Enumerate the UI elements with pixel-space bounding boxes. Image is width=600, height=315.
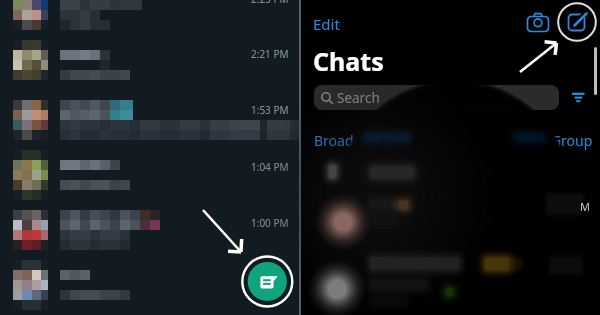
button[interactable]: Search <box>314 85 559 110</box>
button[interactable]: New chat <box>557 2 597 42</box>
staticText: Chats <box>313 44 384 78</box>
staticText: Search <box>337 89 380 107</box>
staticText: New Group <box>518 131 593 150</box>
button[interactable]: Camera <box>527 12 549 34</box>
staticText: 2:21 PM <box>251 47 289 61</box>
button[interactable]: Broadcast Lists <box>314 131 413 150</box>
staticText: 1:00 PM <box>251 216 289 230</box>
staticText: M <box>580 199 590 214</box>
button[interactable]: New chat <box>241 255 294 308</box>
staticText: Edit <box>313 14 340 34</box>
staticText: Broadcast Lists <box>314 131 413 150</box>
staticText: 2:25 PM <box>251 0 289 6</box>
staticText: 1:53 PM <box>251 103 289 117</box>
button[interactable]: New Group <box>518 131 593 150</box>
staticText: 1:04 PM <box>251 160 289 174</box>
button[interactable]: Filter <box>570 90 586 106</box>
button[interactable]: Edit <box>313 14 340 34</box>
